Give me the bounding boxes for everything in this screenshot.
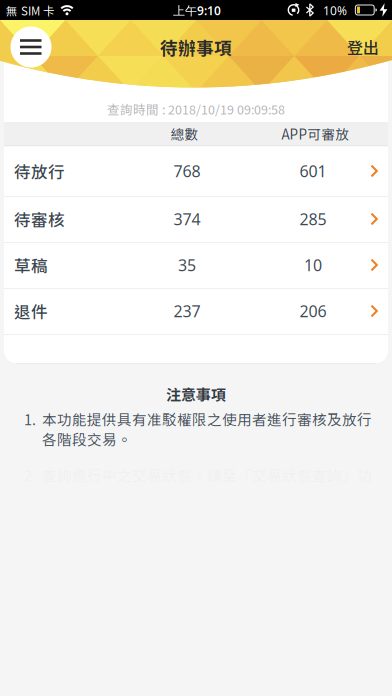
staticText: 285 (299, 208, 326, 230)
button[interactable]: 登出 (337, 25, 389, 69)
staticText: 10% (323, 2, 347, 18)
button[interactable]: 選單 (10, 26, 51, 67)
staticText: 各階段交易。 (42, 428, 132, 449)
button[interactable]: 草稿 (4, 242, 388, 288)
staticText: 待放行 (14, 159, 65, 183)
staticText: 退件 (14, 299, 48, 323)
staticText: 35 (178, 254, 196, 276)
staticText: 總數 (170, 124, 198, 143)
staticText: 10 (304, 254, 322, 276)
staticText: 601 (299, 160, 326, 182)
staticText: 237 (173, 300, 200, 322)
staticText: 待辦事項 (160, 34, 232, 60)
staticText: 768 (173, 160, 200, 182)
button[interactable]: 待審核 (4, 196, 388, 242)
staticText: 上午9:10 (173, 2, 221, 18)
staticText: 本功能提供具有准駁權限之使用者進行審核及放行 (42, 408, 372, 429)
staticText: 草稿 (14, 253, 48, 277)
button[interactable]: 待放行 (4, 146, 388, 196)
staticText: 206 (299, 300, 326, 322)
staticText: 374 (173, 208, 200, 230)
staticText: 待審核 (14, 207, 65, 231)
button[interactable]: 退件 (4, 288, 388, 334)
staticText: 注意事項 (166, 383, 226, 405)
staticText: 無 SIM 卡 (6, 2, 55, 19)
staticText: 1. (24, 408, 36, 429)
staticText: 查詢時間 : 2018/10/19 09:09:58 (107, 100, 285, 118)
staticText: APP可審放 (281, 124, 349, 143)
staticText: 登出 (347, 35, 379, 59)
